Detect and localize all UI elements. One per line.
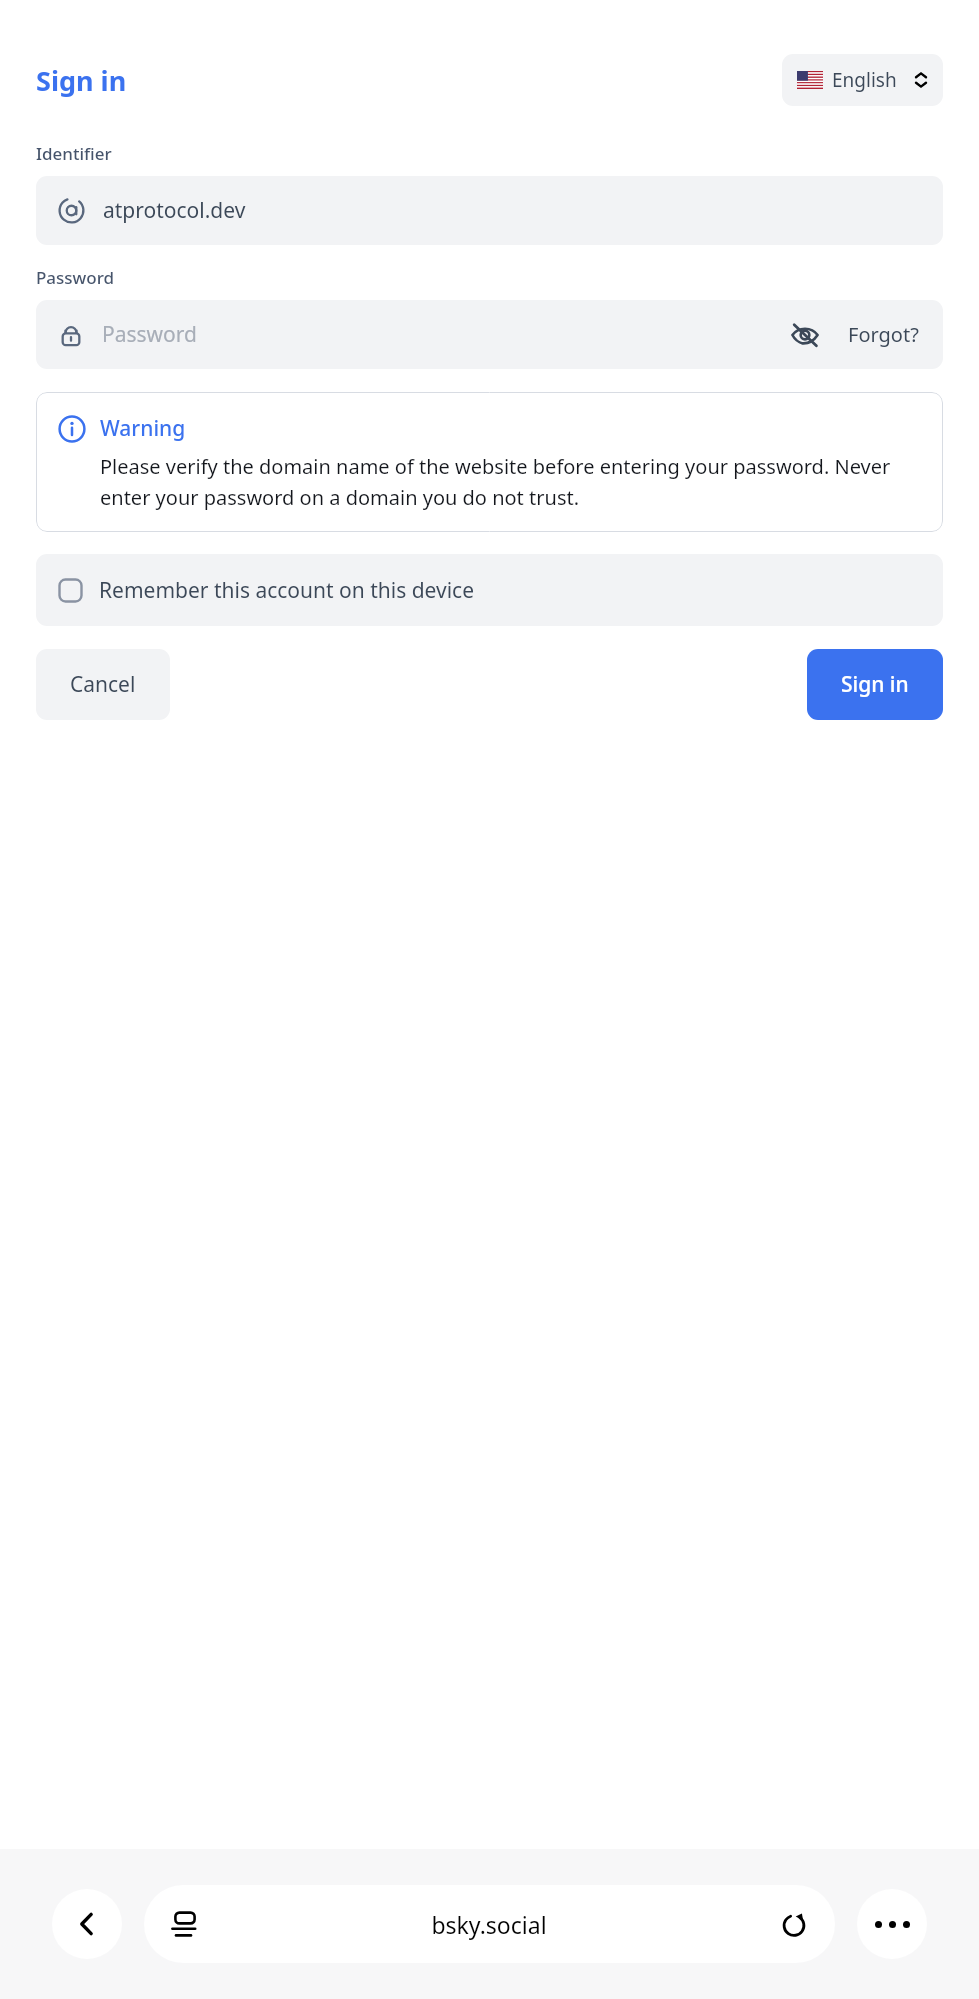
staticText: English xyxy=(832,67,897,93)
staticText: atprotocol.dev xyxy=(103,196,246,225)
staticText: Sign in xyxy=(36,62,127,99)
button[interactable]: More options xyxy=(857,1889,927,1959)
button[interactable]: bsky.social xyxy=(144,1885,835,1963)
staticText: Please verify the domain name of the web… xyxy=(100,453,921,510)
button[interactable]: Forgot? xyxy=(846,319,921,350)
staticText: Password xyxy=(102,320,197,349)
button[interactable]: Cancel xyxy=(36,649,170,720)
button[interactable]: Back xyxy=(52,1889,122,1959)
staticText: Sign in xyxy=(841,670,909,699)
button[interactable]: Remember this account on this device xyxy=(36,554,943,626)
staticText: Remember this account on this device xyxy=(99,576,475,605)
staticText: Cancel xyxy=(70,670,136,699)
button[interactable]: Show password xyxy=(786,316,824,354)
staticText: bsky.social xyxy=(431,1909,547,1940)
staticText: Identifier xyxy=(36,142,112,165)
button[interactable]: Sign in xyxy=(807,649,943,720)
staticText: Password xyxy=(36,266,115,289)
staticText: Warning xyxy=(100,414,186,443)
button[interactable]: English xyxy=(782,54,943,106)
staticText: Forgot? xyxy=(848,321,919,348)
other: Reload xyxy=(779,1909,809,1939)
button[interactable]: atprotocol.dev xyxy=(36,176,943,245)
